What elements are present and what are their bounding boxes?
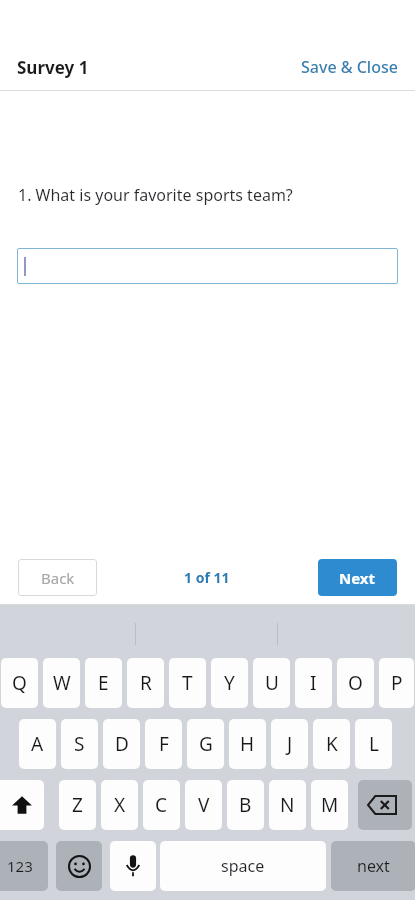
staticText: C — [155, 792, 168, 818]
staticText: U — [265, 670, 279, 696]
button[interactable]: Voice input — [110, 841, 156, 891]
button[interactable] — [17, 248, 398, 284]
button[interactable]: Y — [211, 658, 248, 708]
button[interactable]: Q — [1, 658, 38, 708]
staticText: H — [240, 731, 255, 757]
button[interactable]: V — [185, 780, 222, 830]
staticText: X — [114, 792, 126, 818]
button[interactable]: P — [379, 658, 414, 708]
button[interactable]: Shift — [0, 780, 44, 830]
button[interactable]: C — [143, 780, 180, 830]
button[interactable]: B — [227, 780, 264, 830]
staticText: S — [74, 731, 85, 757]
staticText: W — [53, 670, 71, 696]
button[interactable]: W — [43, 658, 80, 708]
button[interactable]: U — [253, 658, 290, 708]
button[interactable]: J — [271, 719, 308, 769]
button[interactable]: space — [160, 841, 326, 891]
staticText: Back — [41, 568, 75, 588]
staticText: J — [287, 731, 293, 757]
button[interactable]: O — [337, 658, 374, 708]
staticText: R — [140, 670, 152, 696]
staticText: O — [348, 670, 363, 696]
staticText: G — [199, 731, 213, 757]
staticText: P — [391, 670, 403, 696]
button[interactable]: R — [127, 658, 164, 708]
staticText: M — [321, 792, 339, 818]
button[interactable]: Emoji — [56, 841, 102, 891]
button[interactable]: Next — [318, 559, 397, 596]
button[interactable]: Backspace — [358, 780, 412, 830]
staticText: K — [326, 731, 338, 757]
staticText: L — [369, 731, 379, 757]
button[interactable]: Survey 1 — [17, 56, 89, 79]
button[interactable]: A — [19, 719, 56, 769]
button[interactable]: T — [169, 658, 206, 708]
button[interactable]: Save & Close — [301, 56, 398, 78]
button[interactable]: E — [85, 658, 122, 708]
staticText: V — [198, 792, 210, 818]
button[interactable]: F — [145, 719, 182, 769]
staticText: A — [31, 731, 44, 757]
button[interactable]: Back — [18, 559, 97, 596]
button[interactable]: Z — [59, 780, 96, 830]
staticText: Q — [12, 670, 27, 696]
staticText: space — [221, 855, 265, 877]
button[interactable]: H — [229, 719, 266, 769]
staticText: Survey 1 — [17, 56, 89, 79]
staticText: I — [310, 670, 317, 696]
button[interactable]: L — [355, 719, 392, 769]
staticText: Z — [72, 792, 83, 818]
button[interactable]: N — [269, 780, 306, 830]
button[interactable]: 123 — [0, 841, 48, 891]
button[interactable]: G — [187, 719, 224, 769]
staticText: next — [357, 855, 390, 877]
staticText: E — [98, 670, 109, 696]
staticText: Next — [339, 568, 376, 588]
button[interactable]: K — [313, 719, 350, 769]
button[interactable]: D — [103, 719, 140, 769]
button[interactable]: next — [331, 841, 415, 891]
button[interactable]: S — [61, 719, 98, 769]
button[interactable]: X — [101, 780, 138, 830]
button[interactable]: I — [295, 658, 332, 708]
staticText: D — [115, 731, 129, 757]
staticText: 1. What is your favorite sports team? — [18, 184, 293, 206]
staticText: F — [159, 731, 169, 757]
staticText: N — [280, 792, 295, 818]
staticText: T — [182, 670, 193, 696]
staticText: Save & Close — [301, 56, 398, 78]
button[interactable]: M — [311, 780, 348, 830]
staticText: 1 of 11 — [184, 568, 230, 587]
staticText: 123 — [7, 856, 33, 876]
staticText: Y — [224, 670, 235, 696]
staticText: B — [239, 792, 252, 818]
